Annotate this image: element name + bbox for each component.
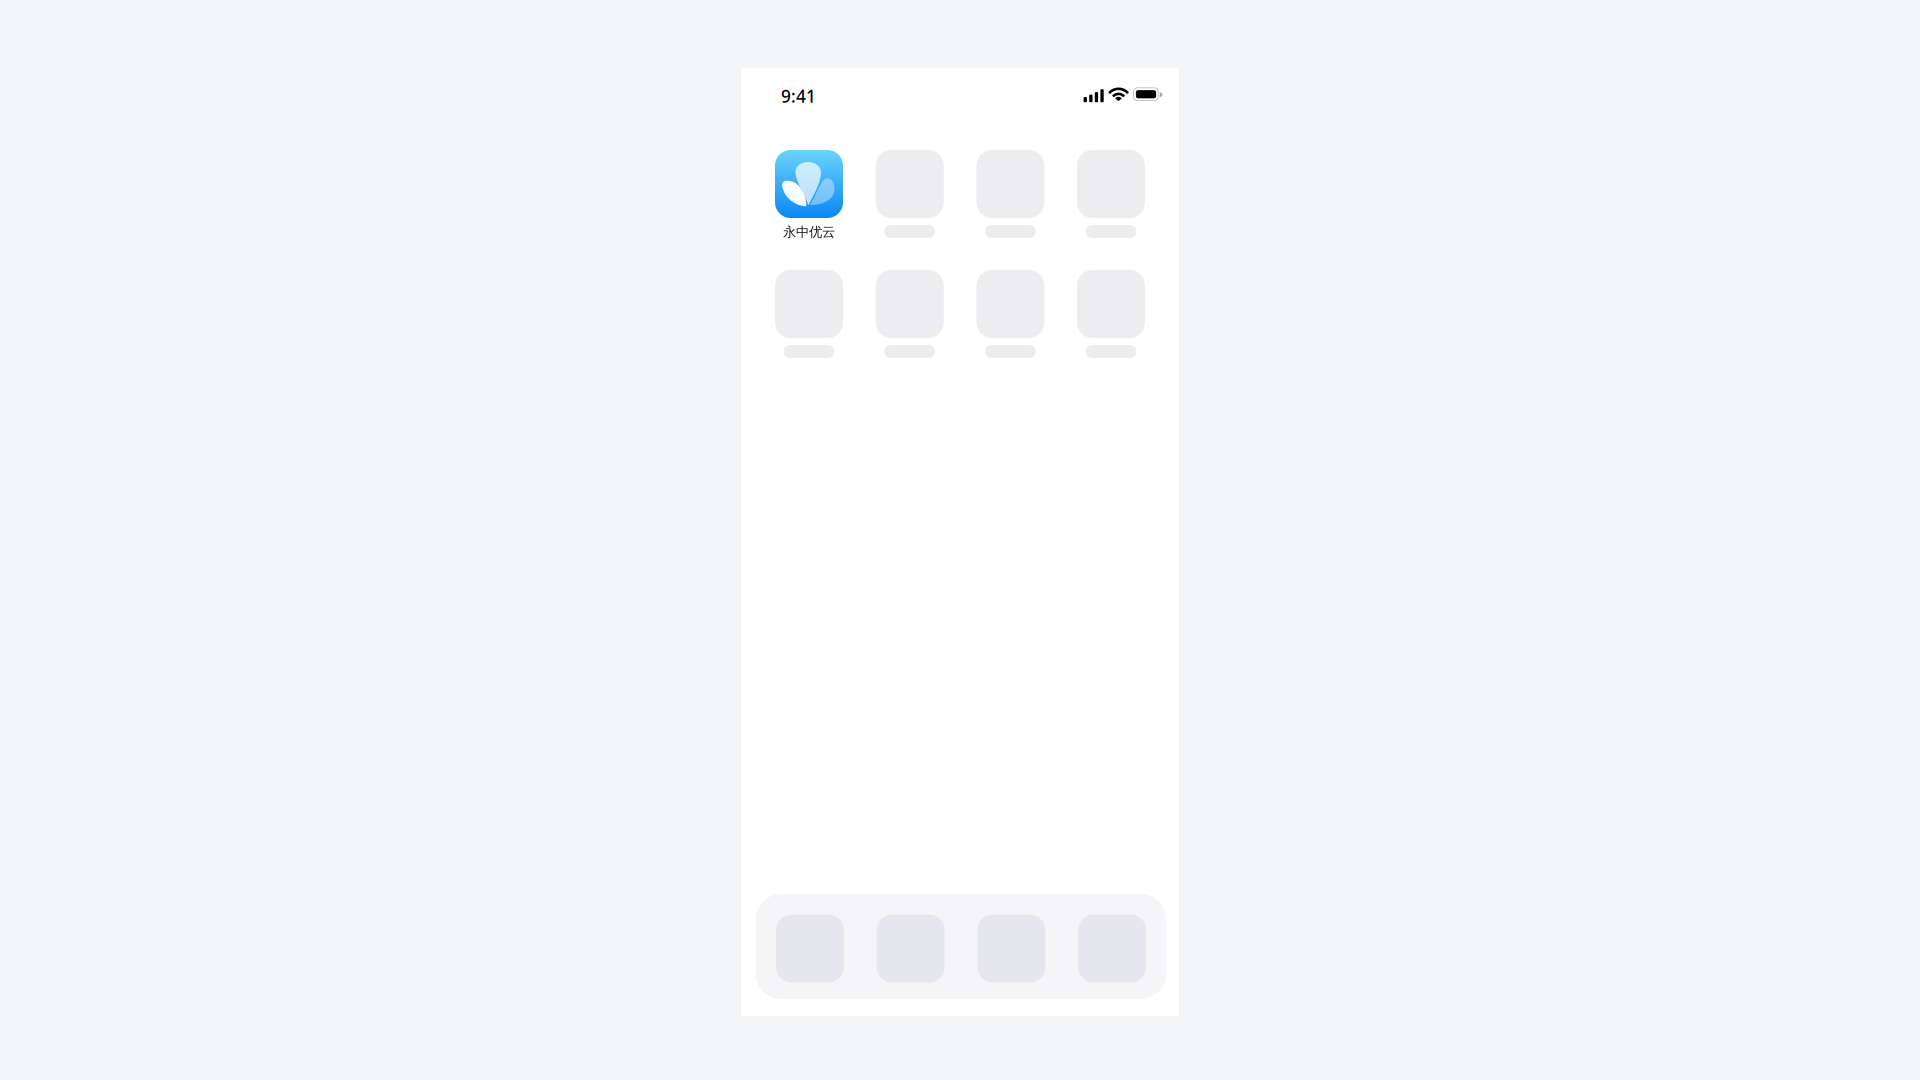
button[interactable]: Dock app xyxy=(877,914,945,982)
button[interactable]: App xyxy=(1077,150,1145,238)
button[interactable]: App xyxy=(1077,270,1145,358)
button[interactable]: App xyxy=(775,270,843,358)
button[interactable]: 永中优云 xyxy=(759,150,859,239)
button[interactable]: Dock app xyxy=(977,914,1045,982)
button[interactable]: Dock app xyxy=(776,914,844,982)
button[interactable]: App xyxy=(876,270,944,358)
button[interactable]: App xyxy=(976,150,1044,238)
button[interactable]: App xyxy=(976,270,1044,358)
staticText: 9:41 xyxy=(781,84,816,107)
button[interactable]: App xyxy=(876,150,944,238)
staticText: 永中优云 xyxy=(783,224,835,240)
button[interactable]: Dock app xyxy=(1078,914,1146,982)
